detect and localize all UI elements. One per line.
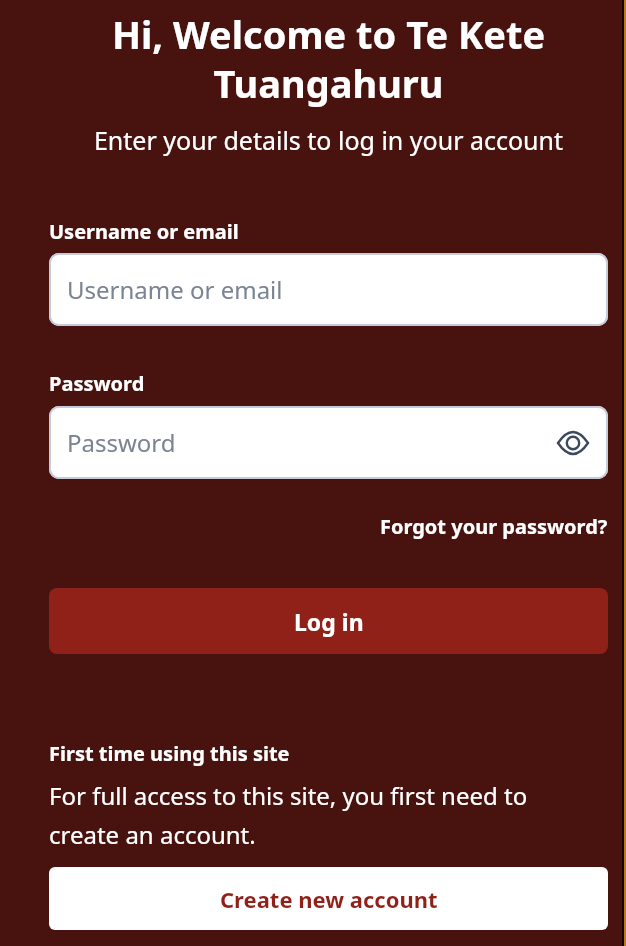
staticText: For full access to this site, you first … bbox=[49, 779, 528, 851]
staticText: First time using this site bbox=[49, 740, 290, 767]
button[interactable]: Create new account bbox=[49, 867, 608, 930]
button[interactable]: Forgot your password? bbox=[380, 513, 608, 540]
staticText: Password bbox=[49, 370, 145, 397]
staticText: Username or email bbox=[67, 273, 283, 306]
staticText: Enter your details to log in your accoun… bbox=[49, 123, 608, 157]
staticText: Create new account bbox=[220, 884, 438, 914]
button[interactable]: Password bbox=[49, 406, 608, 479]
button[interactable]: Username or email bbox=[49, 253, 608, 326]
staticText: Username or email bbox=[49, 218, 239, 245]
staticText: Password bbox=[67, 426, 176, 459]
staticText: Log in bbox=[294, 606, 364, 637]
staticText: Hi, Welcome to Te Kete Tuangahuru bbox=[49, 8, 608, 109]
button[interactable] bbox=[557, 432, 589, 454]
button[interactable]: Log in bbox=[49, 588, 608, 654]
